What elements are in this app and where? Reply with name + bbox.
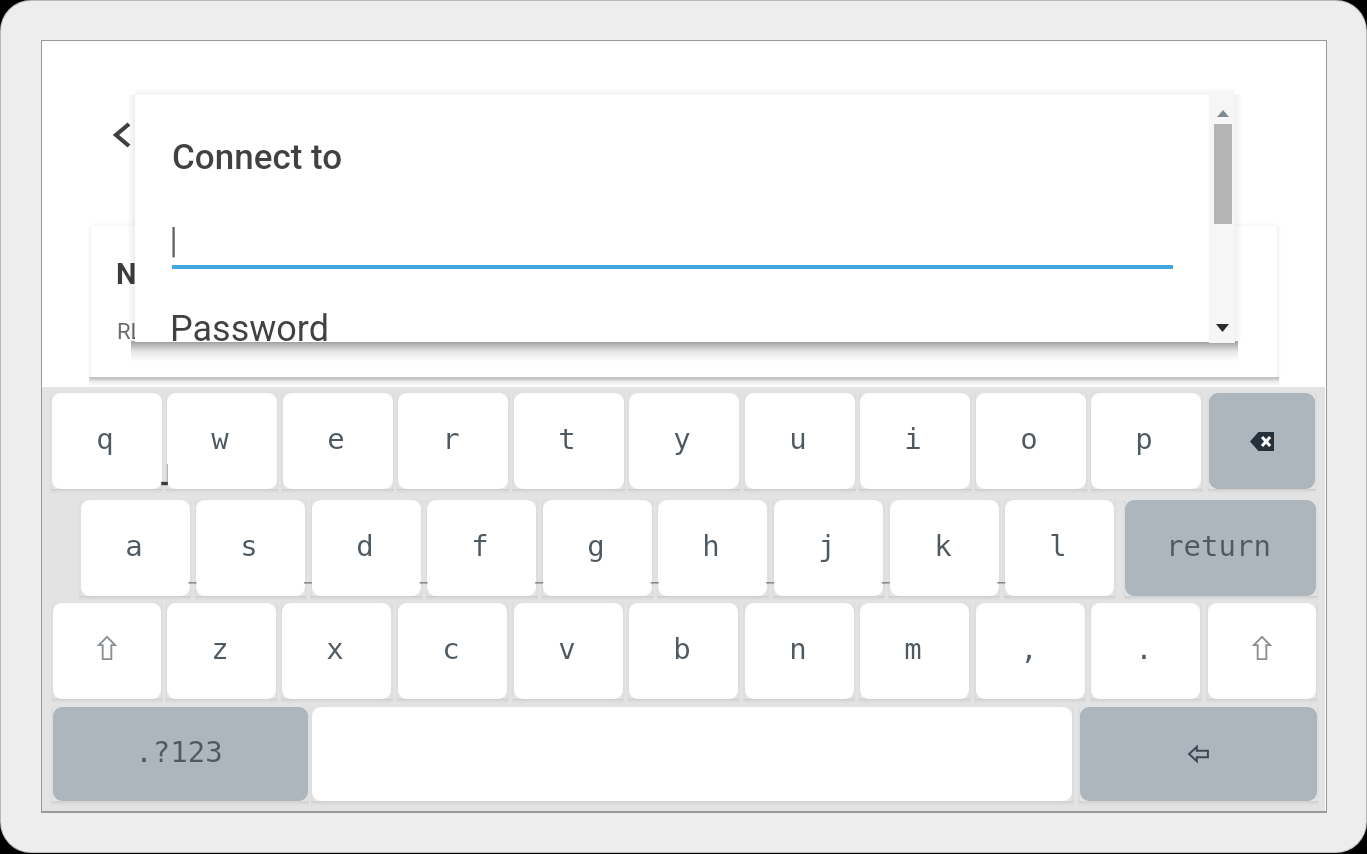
staticText: d bbox=[356, 529, 374, 563]
button[interactable]: Scroll bbox=[1209, 95, 1235, 343]
button[interactable]: x bbox=[282, 603, 391, 699]
button[interactable]: f bbox=[427, 500, 536, 596]
button[interactable]: m bbox=[860, 603, 969, 699]
button[interactable]: j bbox=[774, 500, 883, 596]
staticText: Network name bbox=[116, 257, 306, 291]
staticText: s bbox=[240, 529, 258, 563]
button[interactable]: n bbox=[745, 603, 854, 699]
button[interactable]: r bbox=[398, 393, 508, 489]
button[interactable]: i bbox=[860, 393, 970, 489]
button[interactable]: g bbox=[543, 500, 652, 596]
button[interactable]: s bbox=[196, 500, 305, 596]
staticText: p bbox=[1135, 422, 1153, 456]
button[interactable]: Network name input bbox=[172, 206, 1173, 276]
staticText: b bbox=[673, 632, 691, 666]
staticText: return bbox=[1166, 529, 1271, 563]
staticText: l bbox=[1049, 529, 1067, 563]
button[interactable]: Back bbox=[100, 108, 144, 162]
button[interactable]: k bbox=[890, 500, 999, 596]
staticText: i bbox=[904, 422, 922, 456]
button[interactable]: z bbox=[167, 603, 276, 699]
staticText: RL-NET-2G bbox=[117, 319, 221, 345]
button[interactable]: . bbox=[1091, 603, 1200, 699]
button[interactable]: y bbox=[629, 393, 739, 489]
button[interactable]: Shift bbox=[1208, 603, 1316, 699]
staticText: e bbox=[327, 422, 345, 456]
staticText: u bbox=[789, 422, 807, 456]
button[interactable]: , bbox=[976, 603, 1085, 699]
button[interactable]: d bbox=[312, 500, 421, 596]
button[interactable]: v bbox=[514, 603, 623, 699]
staticText: n bbox=[789, 632, 807, 666]
staticText: . bbox=[1135, 632, 1153, 666]
staticText: , bbox=[1020, 632, 1038, 666]
staticText: m bbox=[904, 632, 922, 666]
button[interactable]: return bbox=[1125, 500, 1316, 596]
button[interactable]: o bbox=[976, 393, 1086, 489]
staticText: f bbox=[471, 529, 489, 563]
button[interactable]: .?123 bbox=[53, 707, 308, 801]
button[interactable]: l bbox=[1005, 500, 1114, 596]
staticText: q bbox=[96, 422, 114, 456]
staticText: Connect to bbox=[172, 137, 343, 178]
staticText: g bbox=[587, 529, 605, 563]
button[interactable]: Network name bbox=[91, 226, 1277, 377]
button[interactable]: Backspace bbox=[1209, 393, 1315, 489]
button[interactable]: c bbox=[398, 603, 507, 699]
button[interactable]: h bbox=[658, 500, 767, 596]
staticText: j bbox=[818, 529, 836, 563]
button[interactable]: Hide keyboard bbox=[1080, 707, 1317, 801]
button[interactable]: u bbox=[745, 393, 855, 489]
button[interactable]: Shift bbox=[53, 603, 161, 699]
button[interactable]: t bbox=[514, 393, 624, 489]
staticText: v bbox=[558, 632, 576, 666]
button[interactable]: a bbox=[81, 500, 190, 596]
staticText: a bbox=[125, 529, 143, 563]
staticText: o bbox=[1020, 422, 1038, 456]
button[interactable]: e bbox=[283, 393, 393, 489]
button[interactable]: w bbox=[167, 393, 277, 489]
staticText: y bbox=[673, 422, 691, 456]
staticText: c bbox=[442, 632, 460, 666]
staticText: r bbox=[442, 422, 460, 456]
staticText: Password bbox=[170, 308, 330, 350]
button[interactable] bbox=[170, 297, 1171, 341]
button[interactable]: b bbox=[629, 603, 738, 699]
staticText: k bbox=[934, 529, 952, 563]
staticText: z bbox=[211, 632, 229, 666]
staticText: h bbox=[702, 529, 720, 563]
staticText: x bbox=[326, 632, 344, 666]
staticText: t bbox=[558, 422, 576, 456]
staticText: w bbox=[211, 422, 229, 456]
button[interactable]: q bbox=[52, 393, 162, 489]
button[interactable]: p bbox=[1091, 393, 1201, 489]
staticText: .?123 bbox=[135, 735, 223, 769]
